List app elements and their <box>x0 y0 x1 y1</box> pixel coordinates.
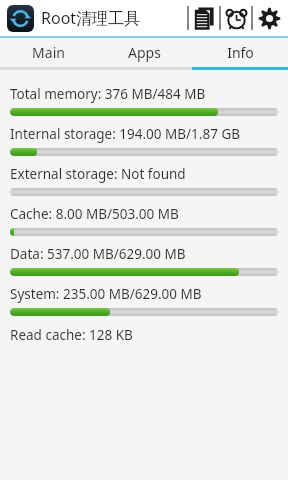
button[interactable]: Apps <box>96 38 192 67</box>
staticText: System: 235.00 MB/629.00 MB <box>10 285 202 303</box>
staticText: External storage: Not found <box>10 165 186 183</box>
staticText: Data: 537.00 MB/629.00 MB <box>10 245 186 263</box>
staticText: Internal storage: 194.00 MB/1.87 GB <box>10 125 240 143</box>
button[interactable]: Cache: 8.00 MB/503.00 MB <box>0 196 288 236</box>
staticText: Total memory: 376 MB/484 MB <box>10 85 206 103</box>
staticText: Read cache: 128 KB <box>10 326 133 344</box>
button[interactable]: Settings <box>253 1 285 35</box>
button[interactable]: Main <box>0 38 96 67</box>
button[interactable]: Logs <box>189 1 219 35</box>
button[interactable]: External storage: Not found <box>0 156 288 196</box>
staticText: Main <box>32 43 65 62</box>
button[interactable]: Data: 537.00 MB/629.00 MB <box>0 236 288 276</box>
staticText: Apps <box>128 43 161 62</box>
button[interactable]: System: 235.00 MB/629.00 MB <box>0 276 288 316</box>
button[interactable]: Internal storage: 194.00 MB/1.87 GB <box>0 116 288 156</box>
staticText: Info <box>227 43 254 62</box>
staticText: Cache: 8.00 MB/503.00 MB <box>10 205 179 223</box>
button[interactable]: Total memory: 376 MB/484 MB <box>0 76 288 116</box>
button[interactable]: Schedule <box>221 1 251 35</box>
staticText: Root清理工具 <box>41 7 141 29</box>
button[interactable]: Info <box>192 38 288 67</box>
